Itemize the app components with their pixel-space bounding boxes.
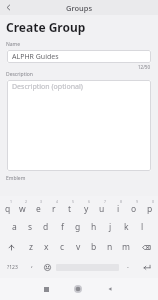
staticText: k (124, 221, 129, 233)
button[interactable]: Shift (0, 237, 23, 257)
staticText: g (75, 221, 81, 233)
button[interactable]: 6 (78, 197, 94, 217)
button[interactable]: s (22, 217, 38, 237)
staticText: 3 (40, 199, 43, 204)
staticText: Name (6, 41, 21, 48)
staticText: r (52, 203, 56, 215)
staticText: v (76, 241, 81, 253)
button[interactable]: 7 (94, 197, 110, 217)
button[interactable]: l (134, 217, 150, 237)
button[interactable]: d (38, 217, 54, 237)
button[interactable]: h (86, 217, 102, 237)
button[interactable]: c (54, 237, 70, 257)
staticText: , (31, 260, 33, 270)
button[interactable]: 5 (62, 197, 78, 217)
staticText: t (68, 203, 72, 215)
button[interactable]: z (23, 237, 38, 257)
button[interactable]: Home (62, 278, 94, 300)
staticText: n (107, 241, 113, 253)
staticText: Description (optional) (12, 82, 83, 92)
staticText: a (12, 221, 17, 233)
staticText: l (141, 221, 144, 233)
button[interactable]: j (102, 217, 118, 237)
staticText: 4 (56, 199, 59, 204)
button[interactable]: 3 (30, 197, 46, 217)
staticText: 8 (120, 199, 123, 204)
staticText: u (99, 203, 105, 215)
staticText: m (122, 241, 130, 253)
staticText: j (109, 221, 112, 233)
staticText: w (19, 203, 26, 215)
button[interactable]: 2 (15, 197, 30, 217)
button[interactable]: ALPHR Guides (7, 50, 151, 63)
staticText: c (60, 241, 65, 253)
button[interactable]: x (38, 237, 54, 257)
button[interactable]: 4 (46, 197, 62, 217)
staticText: d (43, 221, 49, 233)
staticText: o (131, 203, 137, 215)
button[interactable]: ?123 (0, 257, 24, 277)
staticText: q (5, 203, 11, 215)
staticText: e (36, 203, 41, 215)
staticText: 9 (136, 199, 139, 204)
button[interactable]: v (70, 237, 86, 257)
staticText: Groups (66, 3, 93, 13)
staticText: 0 (152, 199, 155, 204)
button[interactable]: Back (0, 0, 16, 15)
staticText: Emblem (6, 175, 26, 182)
button[interactable]: n (102, 237, 118, 257)
button[interactable]: 1 (0, 197, 15, 217)
staticText: Create Group (6, 19, 86, 35)
staticText: z (29, 241, 33, 253)
staticText: h (91, 221, 97, 233)
staticText: 6 (88, 199, 91, 204)
staticText: 2 (25, 199, 28, 204)
staticText: s (28, 221, 33, 233)
button[interactable]: b (86, 237, 102, 257)
button[interactable]: Enter (135, 257, 158, 277)
button[interactable]: Description (optional) (7, 80, 151, 171)
staticText: 7 (104, 199, 107, 204)
button[interactable]: f (54, 217, 70, 237)
staticText: b (91, 241, 97, 253)
button[interactable]: 0 (142, 197, 158, 217)
button[interactable]: k (118, 217, 134, 237)
button[interactable]: Recents (31, 278, 62, 300)
staticText: f (61, 221, 64, 233)
staticText: ALPHR Guides (12, 52, 59, 62)
button[interactable]: 9 (126, 197, 142, 217)
button[interactable]: m (118, 237, 134, 257)
staticText: 12/50 (138, 64, 150, 70)
button[interactable]: Backspace (134, 237, 158, 257)
button[interactable]: a (7, 217, 22, 237)
button[interactable]: Back (94, 278, 126, 300)
staticText: 5 (72, 199, 75, 204)
button[interactable]: . (120, 257, 135, 277)
button[interactable]: , (24, 257, 40, 277)
staticText: ?123 (7, 264, 18, 271)
staticText: y (84, 203, 89, 215)
button[interactable]: 8 (110, 197, 126, 217)
button[interactable]: g (70, 217, 86, 237)
staticText: i (117, 203, 120, 215)
staticText: p (147, 203, 153, 215)
staticText: 1 (10, 199, 13, 204)
button[interactable]: Emoji (40, 257, 55, 277)
staticText: Description (6, 71, 33, 78)
staticText: . (127, 261, 129, 271)
staticText: x (44, 241, 49, 253)
